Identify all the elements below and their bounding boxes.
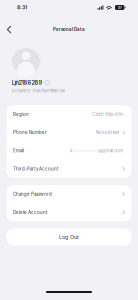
button[interactable]: Third-Party Account bbox=[6, 160, 131, 178]
staticText: Email bbox=[13, 148, 24, 153]
staticText: Third-Party Account bbox=[13, 166, 58, 172]
button[interactable]: Back bbox=[2, 23, 16, 36]
staticText: Delete Account bbox=[13, 210, 47, 215]
button[interactable]: Log Out bbox=[6, 228, 131, 245]
staticText: None linked bbox=[95, 130, 119, 135]
staticText: Phone Number bbox=[13, 130, 47, 135]
staticText: Change Password bbox=[13, 191, 52, 197]
staticText: Region bbox=[13, 112, 29, 117]
staticText: Log Out bbox=[59, 234, 79, 240]
staticText: k··························@gmail.com bbox=[70, 148, 123, 153]
staticText: Ljn2186289 bbox=[11, 79, 42, 86]
button[interactable]: Change Password bbox=[6, 185, 131, 203]
button[interactable]: Region bbox=[6, 105, 131, 123]
staticText: 37 bbox=[118, 5, 122, 10]
staticText: Personal Data bbox=[53, 27, 85, 32]
staticText: 8:31 bbox=[17, 4, 27, 10]
staticText: Account ID: n1b0f3071f9b01d6 bbox=[11, 88, 64, 93]
button[interactable]: Email bbox=[6, 142, 131, 160]
button[interactable]: Delete Account bbox=[6, 203, 131, 221]
button[interactable]: Phone Number bbox=[6, 123, 131, 142]
staticText: Czech Republic bbox=[92, 112, 123, 117]
